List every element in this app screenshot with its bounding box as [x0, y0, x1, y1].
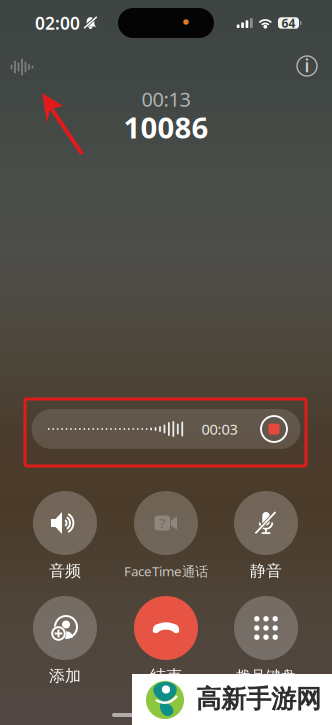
button[interactable]: 音频: [15, 491, 115, 581]
staticText: 静音: [250, 561, 282, 581]
button[interactable]: 静音: [216, 491, 316, 581]
button[interactable]: 添加: [15, 596, 115, 686]
button[interactable]: 结束: [116, 596, 216, 686]
staticText: 音频: [49, 561, 81, 581]
staticText: 添加: [49, 666, 81, 686]
button[interactable]: ?: [112, 491, 220, 581]
staticText: 00:13: [141, 86, 190, 112]
button[interactable]: Call details: [295, 54, 319, 78]
staticText: ?: [159, 513, 166, 533]
button[interactable]: Live Voicemail: [11, 57, 33, 77]
staticText: 00:03: [201, 419, 237, 439]
staticText: 拨号键盘: [236, 667, 296, 685]
staticText: 02:00: [35, 11, 80, 34]
staticText: 10086: [123, 107, 208, 146]
staticText: 高新手游网: [196, 683, 321, 714]
staticText: 64: [281, 15, 295, 31]
button[interactable]: Stop recording: [259, 414, 288, 443]
button[interactable]: 拨号键盘: [216, 596, 316, 686]
staticText: i: [304, 54, 309, 77]
staticText: FaceTime通话: [124, 562, 208, 580]
staticText: 结束: [150, 666, 182, 686]
